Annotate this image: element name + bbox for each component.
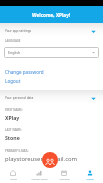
staticText: playstoreuser@gmail.com (5, 155, 78, 163)
staticText: Schedule (59, 177, 70, 180)
button[interactable]: Your personal data (0, 90, 103, 103)
staticText: LAST NAME: (5, 128, 22, 132)
staticText: Home (10, 177, 17, 180)
staticText: Logout (5, 78, 21, 84)
button[interactable]: Emergency (42, 152, 58, 168)
staticText: FIRST NAME: (5, 108, 23, 112)
button[interactable]: Profile (78, 166, 102, 183)
staticText: PRIMARY E-MAIL: (5, 149, 29, 153)
staticText: Your personal data (5, 96, 34, 100)
staticText: Your app settings (5, 29, 32, 33)
staticText: Welcome, XPlay! (32, 12, 71, 18)
button[interactable]: Your app settings (0, 23, 103, 36)
button[interactable]: Home (1, 166, 25, 183)
staticText: XPlay (5, 114, 20, 121)
button[interactable]: English (4, 47, 99, 58)
button[interactable]: Contact status (27, 166, 51, 183)
button[interactable]: Logout (0, 76, 103, 85)
staticText: Contact status (31, 177, 48, 180)
staticText: Stone (5, 134, 20, 141)
staticText: LANGUAGE (5, 39, 21, 43)
button[interactable]: Schedule (52, 166, 76, 183)
staticText: English (8, 50, 21, 55)
staticText: Profile (86, 177, 94, 180)
button[interactable]: Change password (0, 67, 103, 76)
staticText: Change password (5, 69, 44, 75)
